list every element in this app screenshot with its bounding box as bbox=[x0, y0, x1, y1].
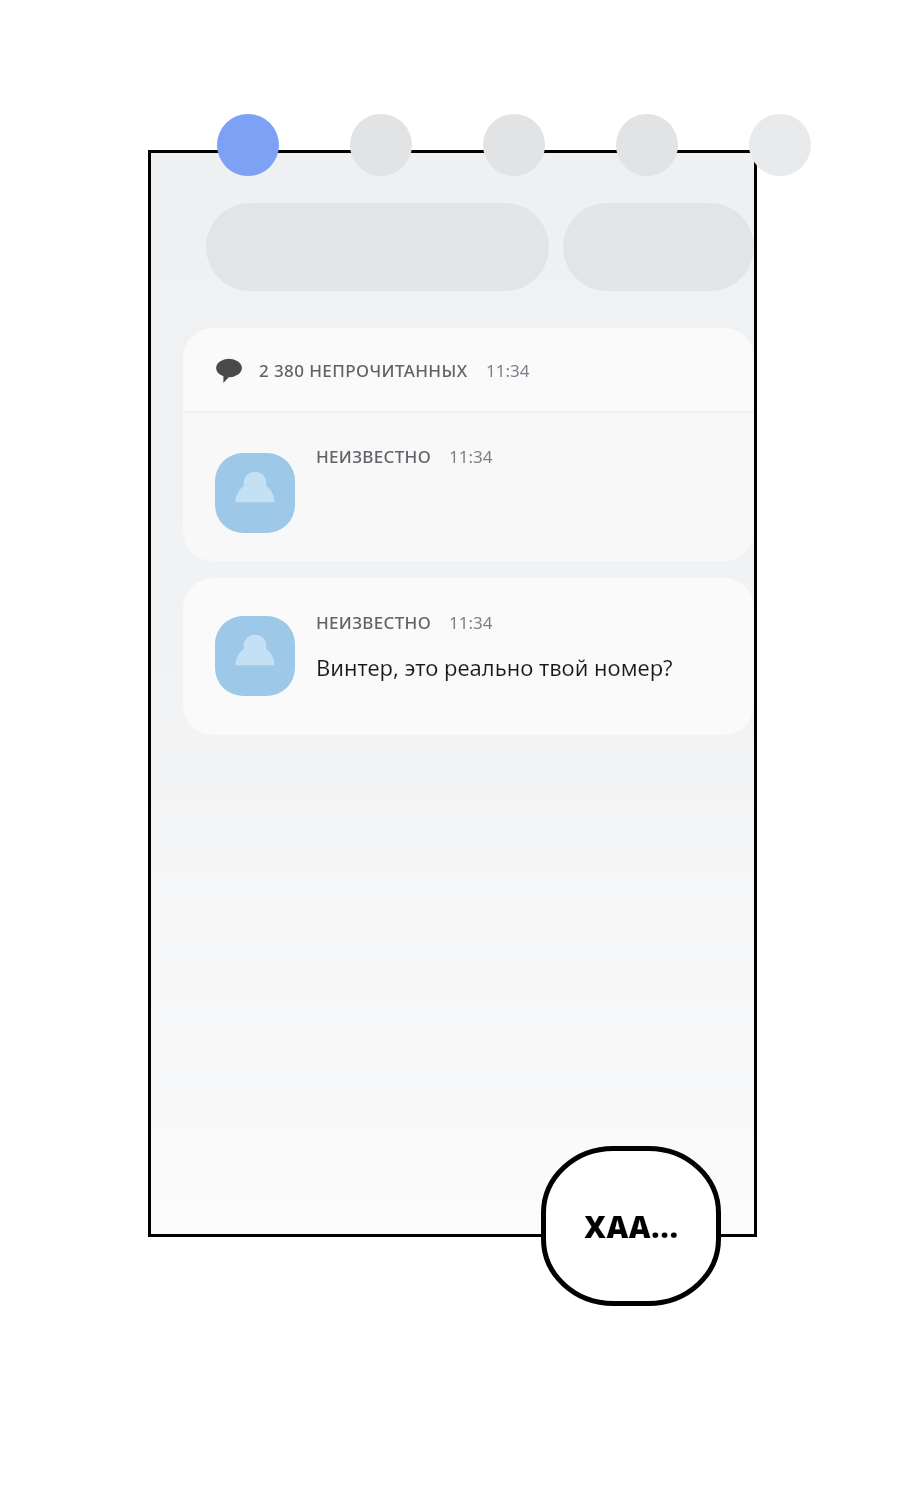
other: Contact avatar bbox=[215, 453, 295, 533]
staticText: НЕИЗВЕСТНО bbox=[316, 445, 431, 468]
button[interactable]: Contact avatar bbox=[183, 413, 754, 561]
staticText: НЕИЗВЕСТНО bbox=[316, 611, 431, 634]
staticText: Винтер, это реально твой номер? bbox=[316, 652, 673, 682]
button[interactable]: Contact avatar bbox=[183, 578, 754, 735]
staticText: 11:34 bbox=[449, 445, 493, 468]
button[interactable] bbox=[563, 203, 754, 291]
button[interactable]: 2 380 НЕПРОЧИТАННЫХ bbox=[183, 328, 754, 411]
button[interactable] bbox=[206, 203, 549, 291]
staticText: 11:34 bbox=[486, 359, 530, 382]
staticText: 2 380 НЕПРОЧИТАННЫХ bbox=[259, 359, 468, 382]
staticText: 11:34 bbox=[449, 611, 493, 634]
other: Contact avatar bbox=[215, 616, 295, 696]
staticText: XAA... bbox=[584, 1206, 679, 1247]
